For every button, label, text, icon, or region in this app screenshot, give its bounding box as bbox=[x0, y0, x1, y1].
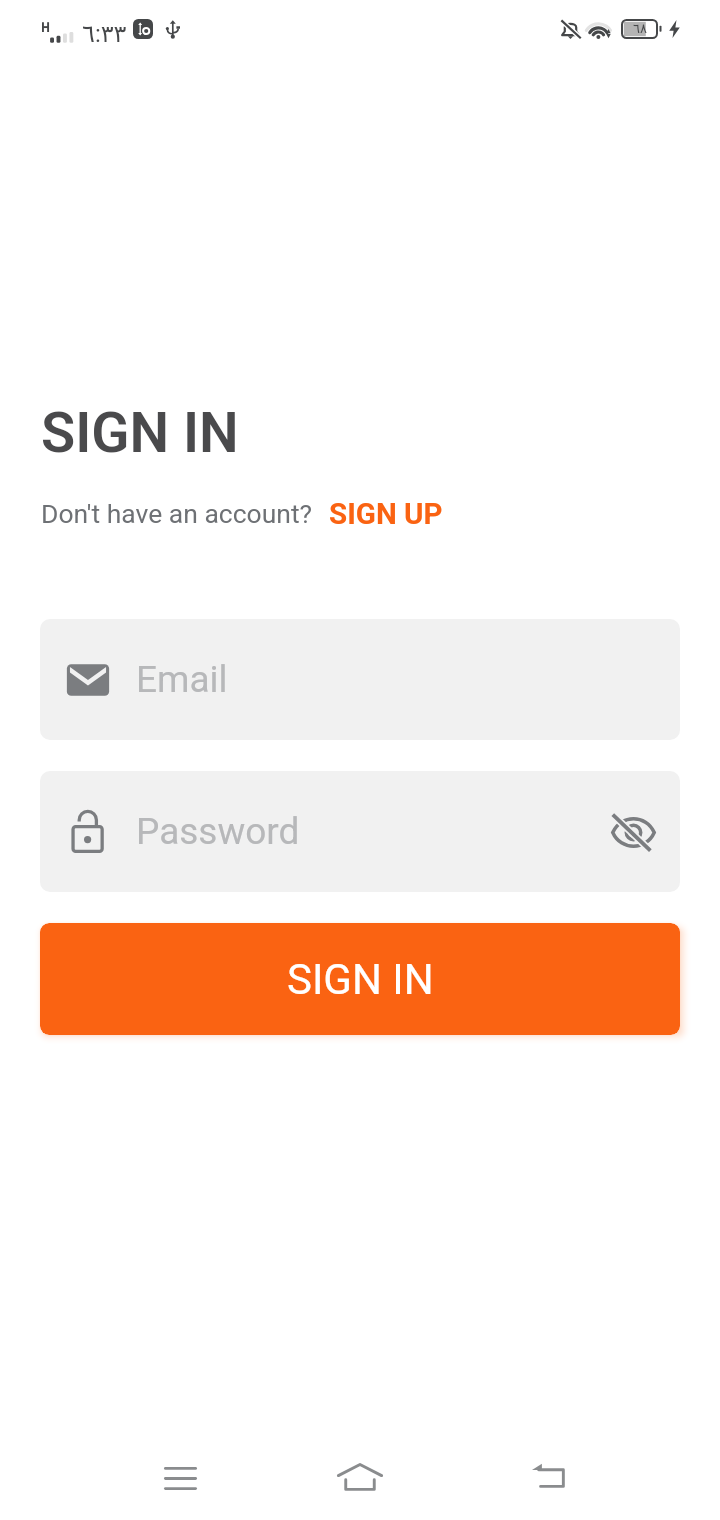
button[interactable]: Home bbox=[310, 1445, 410, 1511]
button[interactable]: Back bbox=[498, 1443, 598, 1509]
button[interactable]: SIGN IN bbox=[40, 923, 680, 1035]
staticText: Email bbox=[136, 658, 228, 701]
staticText: Password bbox=[136, 810, 300, 853]
staticText: ٦:٣٣ bbox=[82, 20, 127, 48]
button[interactable]: Email bbox=[40, 619, 680, 740]
button[interactable]: SIGN UP bbox=[329, 497, 443, 532]
button[interactable]: Show password bbox=[600, 799, 666, 865]
staticText: Don't have an account? bbox=[41, 498, 313, 529]
staticText: SIGN IN bbox=[41, 400, 239, 466]
button[interactable]: Password bbox=[40, 771, 680, 892]
staticText: SIGN IN bbox=[287, 955, 434, 1004]
button[interactable]: Recent apps bbox=[130, 1445, 230, 1511]
staticText: ٦٨ bbox=[633, 21, 647, 36]
staticText: SIGN UP bbox=[329, 497, 443, 532]
